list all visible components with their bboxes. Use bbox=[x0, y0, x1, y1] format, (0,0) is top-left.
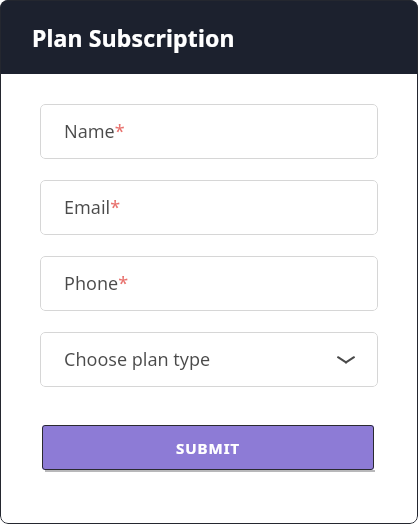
staticText: Choose plan type bbox=[64, 347, 211, 372]
staticText: Phone* bbox=[64, 271, 129, 296]
button[interactable]: Phone* bbox=[40, 256, 378, 311]
button[interactable]: SUBMIT bbox=[42, 425, 374, 470]
staticText: Plan Subscription bbox=[32, 22, 235, 53]
staticText: SUBMIT bbox=[176, 438, 241, 458]
button[interactable]: Email* bbox=[40, 180, 378, 235]
button[interactable]: Choose plan type dropdown bbox=[40, 332, 378, 387]
button[interactable]: Name* bbox=[40, 104, 378, 159]
staticText: Name* bbox=[64, 119, 125, 144]
staticText: Email* bbox=[64, 195, 121, 220]
